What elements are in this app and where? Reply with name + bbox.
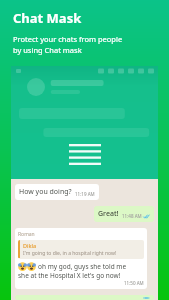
button[interactable]: Great! (94, 206, 154, 222)
staticText: Dikla (23, 242, 37, 249)
button[interactable]: How you doing? (15, 184, 99, 200)
staticText: How you doing? (19, 187, 72, 197)
staticText: I'm going to die, in a hospital right no… (23, 250, 117, 257)
staticText: 11:50 AM (124, 280, 144, 286)
staticText: Chat Mask (13, 9, 82, 27)
staticText: Protect your chats from people by using … (13, 34, 123, 55)
button[interactable]: Roman (15, 228, 147, 289)
button[interactable]: Damn I am coming! (15, 295, 154, 300)
button[interactable]: Chat mask (66, 141, 104, 168)
staticText: oh my god, guys she told me (38, 262, 127, 271)
staticText: Roman (18, 231, 35, 238)
staticText: Great! (98, 209, 119, 219)
staticText: 11:48 AM (122, 213, 142, 219)
staticText: 11:19 AM (75, 191, 95, 197)
staticText: she at the Hospital X let's go now! (18, 271, 121, 280)
